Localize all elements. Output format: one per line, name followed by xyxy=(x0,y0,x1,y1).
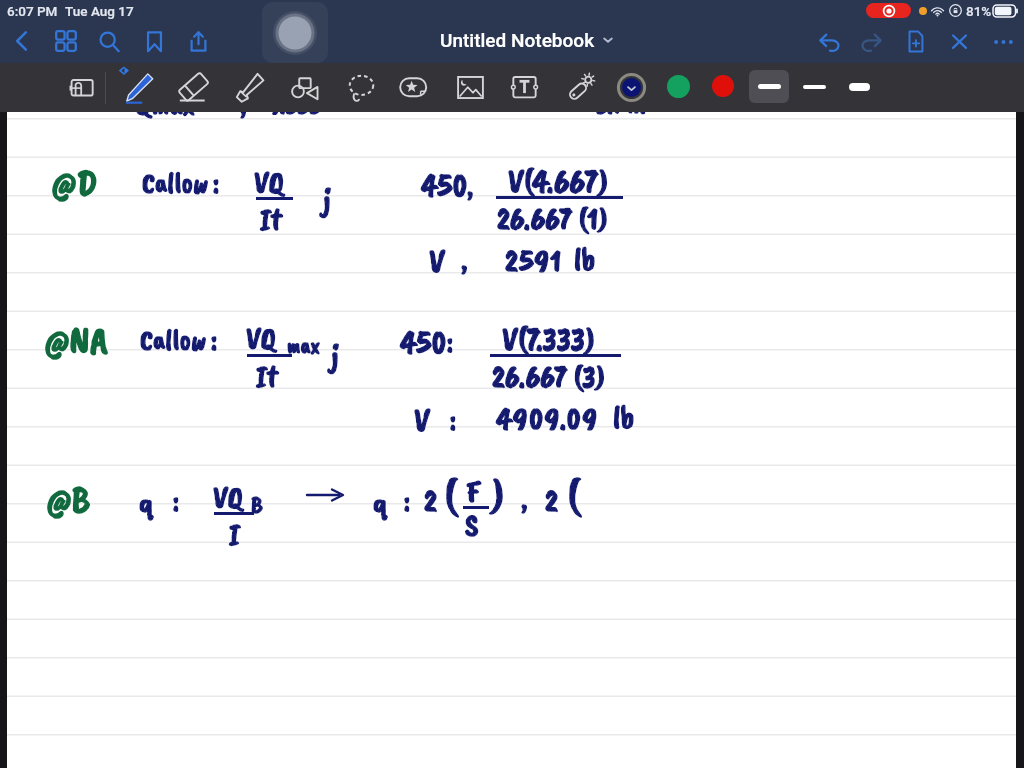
button[interactable]: Pen xyxy=(122,70,155,105)
staticText: VQ xyxy=(246,319,276,358)
staticText: It xyxy=(256,357,278,395)
staticText: 450 xyxy=(401,322,448,362)
staticText: q xyxy=(373,481,388,523)
button[interactable]: Close xyxy=(946,28,972,54)
button[interactable]: Lasso xyxy=(345,70,378,105)
staticText: VQ xyxy=(254,163,284,202)
staticText: @NA xyxy=(45,317,108,365)
button[interactable]: Text xyxy=(508,70,541,105)
button[interactable]: Green colour xyxy=(667,75,690,98)
staticText: B xyxy=(251,489,263,519)
staticText: 4909.09 xyxy=(497,399,599,438)
staticText: : xyxy=(447,324,453,359)
staticText: : xyxy=(404,483,410,518)
staticText: Callow xyxy=(142,164,208,201)
staticText: It xyxy=(260,200,282,238)
staticText: , xyxy=(240,84,247,123)
staticText: , xyxy=(521,479,528,518)
button[interactable]: Eraser xyxy=(177,70,210,105)
staticText: 2 xyxy=(545,481,558,520)
staticText: Callow xyxy=(140,321,206,358)
staticText: : xyxy=(213,164,220,201)
button[interactable]: Sticker xyxy=(397,70,430,105)
staticText: 26.667 (1) xyxy=(497,199,608,238)
staticText: 3.1 in xyxy=(596,86,646,121)
button[interactable]: Stroke medium xyxy=(749,70,789,103)
staticText: : xyxy=(447,324,453,359)
button[interactable]: More xyxy=(990,28,1016,54)
staticText: , xyxy=(461,240,468,279)
staticText: S xyxy=(465,505,479,544)
staticText: 2591 xyxy=(505,241,563,280)
staticText: VQ xyxy=(213,478,243,517)
button[interactable]: Bookmark xyxy=(141,28,167,54)
button[interactable]: Redo xyxy=(858,28,884,54)
staticText: VQ xyxy=(213,478,243,517)
button[interactable]: Shapes xyxy=(288,70,321,105)
button[interactable]: New page xyxy=(902,28,928,54)
button[interactable]: Navy colour xyxy=(617,73,646,102)
staticText: : xyxy=(450,402,456,437)
staticText: @B xyxy=(47,476,90,524)
staticText: ) xyxy=(491,468,505,523)
staticText: Tue Aug 17 xyxy=(65,3,134,19)
staticText: 450 xyxy=(422,165,469,205)
button[interactable]: Pages xyxy=(53,28,79,54)
staticText: 81% xyxy=(966,3,992,19)
button[interactable]: Pages panel xyxy=(65,70,98,105)
staticText: I xyxy=(229,515,241,553)
button[interactable]: Untitled Notebook xyxy=(440,29,613,51)
staticText: j xyxy=(331,332,339,375)
staticText: , xyxy=(467,167,474,205)
staticText: : xyxy=(404,483,410,518)
staticText: max xyxy=(287,331,320,360)
staticText: Qmax xyxy=(136,84,195,123)
staticText: ( xyxy=(444,468,457,523)
staticText: j xyxy=(323,176,331,219)
button[interactable]: Stroke thick xyxy=(840,70,878,103)
staticText: B xyxy=(251,489,263,519)
staticText: F xyxy=(466,472,481,511)
staticText: 9.333 xyxy=(268,86,322,121)
staticText: Callow xyxy=(142,164,208,201)
button[interactable]: Search xyxy=(96,28,122,54)
staticText: V xyxy=(414,399,430,441)
staticText: j xyxy=(323,176,331,219)
staticText: 450 xyxy=(401,322,448,362)
staticText: 6:07 PM xyxy=(7,3,58,19)
button[interactable]: Red colour xyxy=(712,75,734,97)
staticText: : xyxy=(173,483,179,518)
staticText: : xyxy=(213,164,220,201)
button[interactable]: Undo xyxy=(816,28,842,54)
button[interactable]: Share xyxy=(185,28,211,54)
button[interactable]: AssistiveTouch xyxy=(262,2,328,63)
staticText: ( xyxy=(444,468,457,523)
staticText: lb xyxy=(613,397,635,436)
staticText: , xyxy=(521,479,528,518)
staticText: VQ xyxy=(254,163,284,202)
staticText: lb xyxy=(613,397,635,436)
button[interactable]: Back xyxy=(9,28,35,54)
staticText: V(7.333) xyxy=(502,318,595,360)
button[interactable]: Magic xyxy=(564,70,597,105)
staticText: lb xyxy=(574,239,596,278)
staticText: 26.667 (1) xyxy=(497,199,608,238)
staticText: 2 xyxy=(424,481,437,520)
staticText: ) xyxy=(491,468,505,523)
button[interactable]: Stroke thin xyxy=(795,70,833,103)
staticText: q xyxy=(373,481,388,523)
staticText: q xyxy=(139,481,154,523)
staticText: : xyxy=(211,321,218,358)
staticText: 3.1 in xyxy=(596,86,646,121)
staticText: : xyxy=(450,402,456,437)
button[interactable]: Image xyxy=(454,70,487,105)
staticText: 2591 xyxy=(505,241,563,280)
staticText: 4909.09 xyxy=(497,399,599,438)
button[interactable]: Highlighter xyxy=(233,70,266,105)
staticText: lb xyxy=(574,239,596,278)
staticText: 2 xyxy=(424,481,437,520)
staticText: F xyxy=(466,472,481,511)
staticText: 26.667 (3) xyxy=(492,357,605,396)
staticText: , xyxy=(240,84,247,123)
staticText: : xyxy=(211,321,218,358)
